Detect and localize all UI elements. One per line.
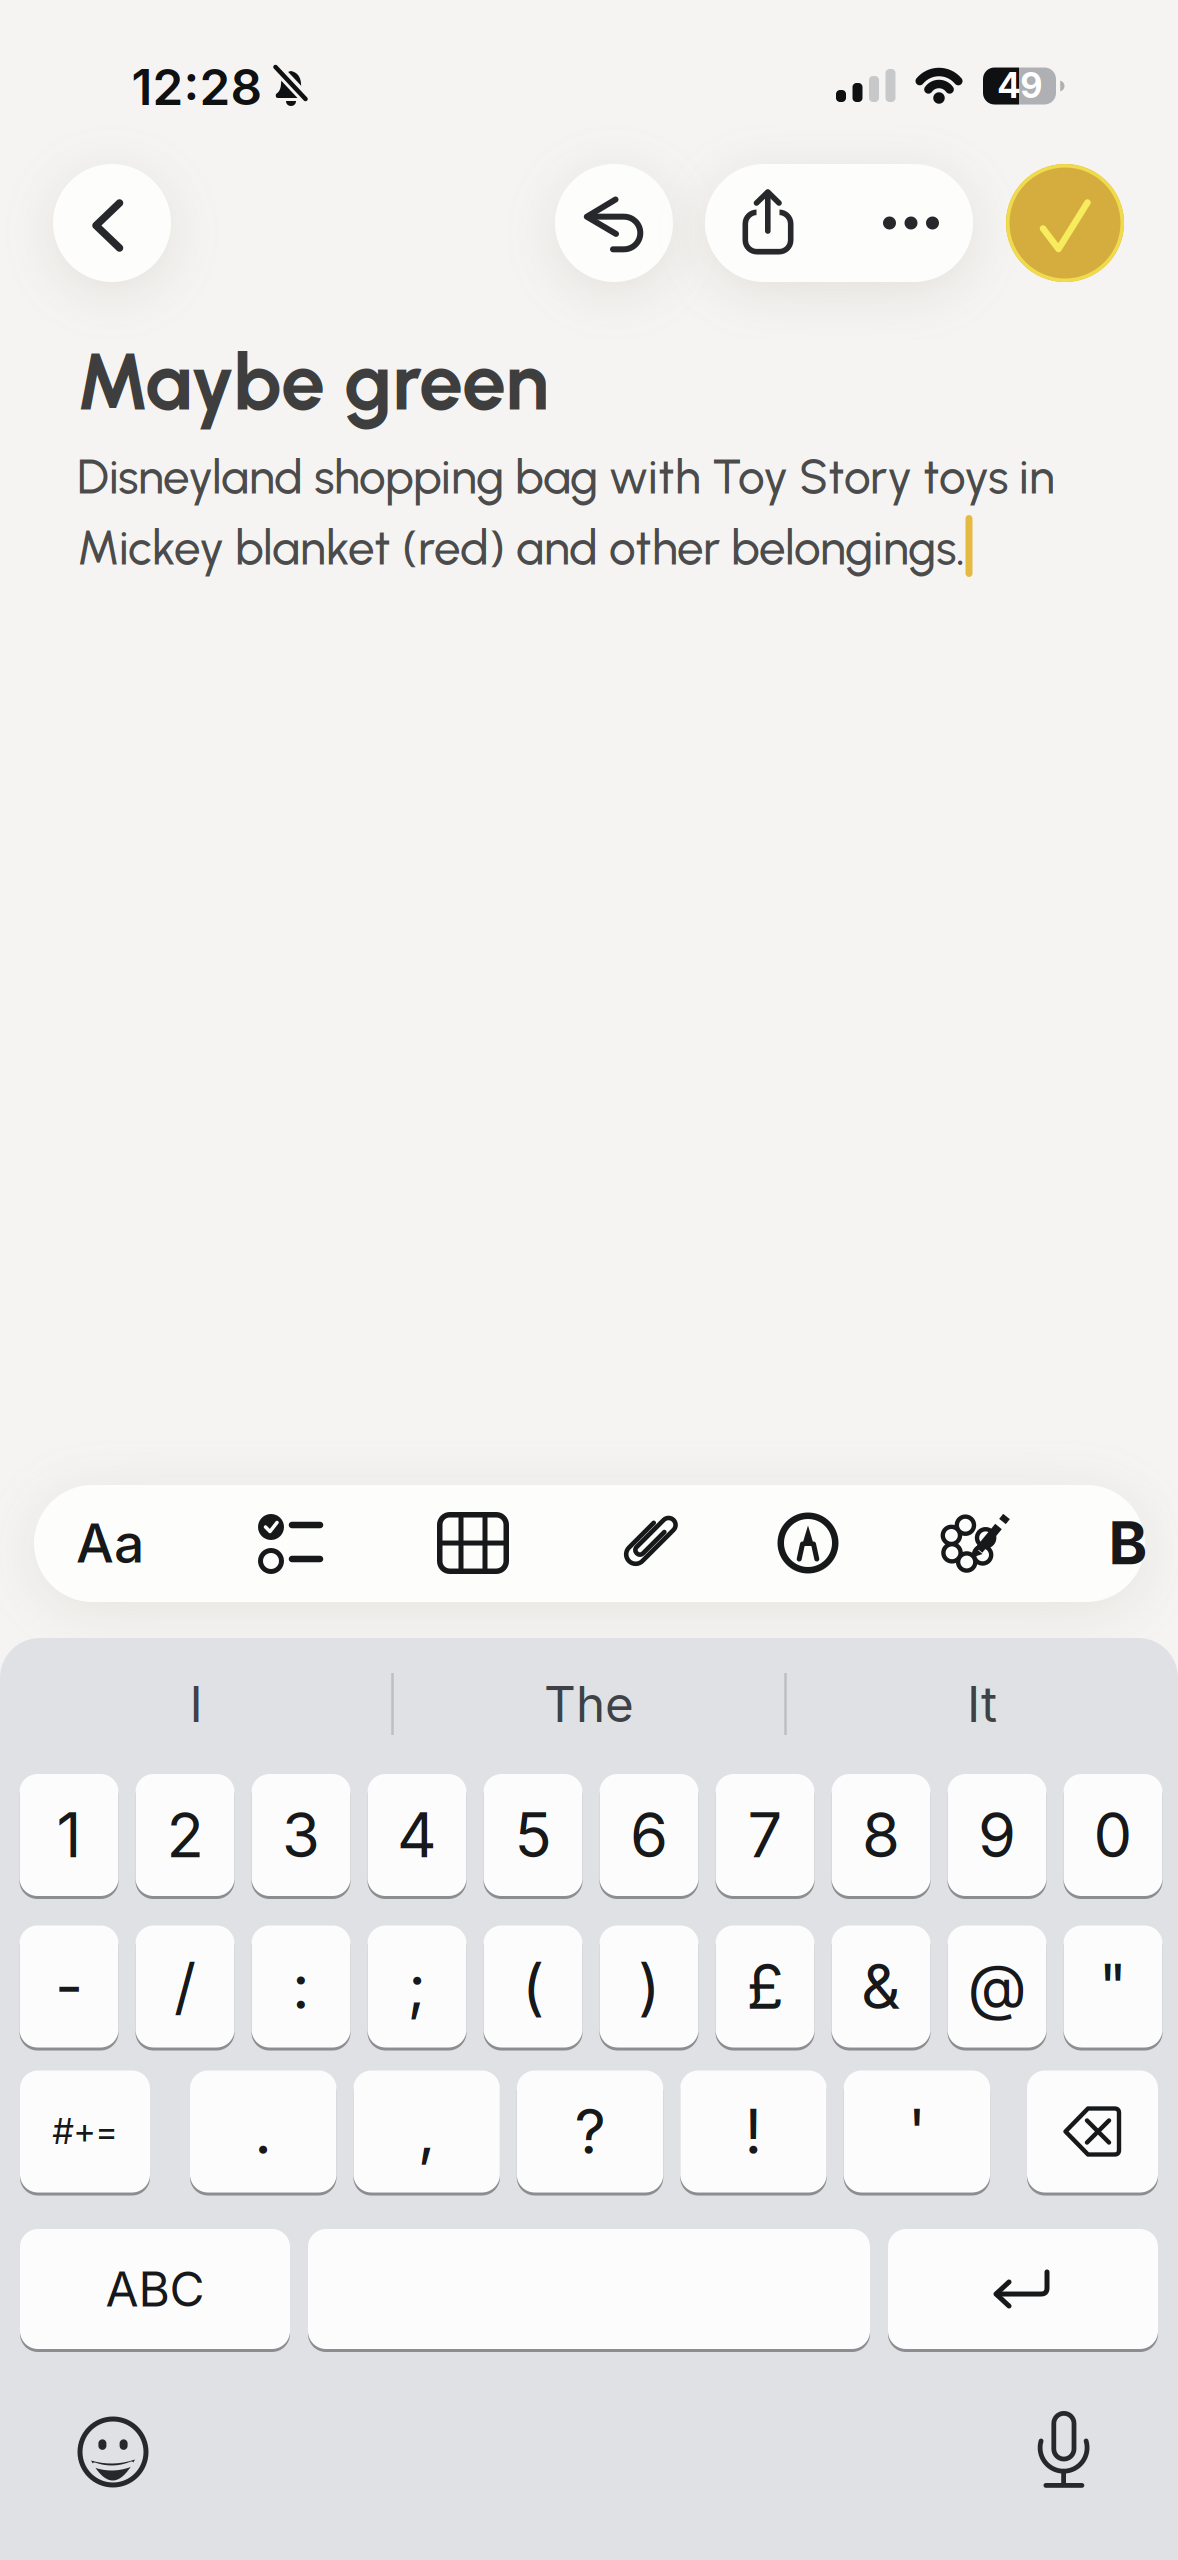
button[interactable]: Share <box>705 164 839 282</box>
staticText: ? <box>574 2094 605 2169</box>
button[interactable]: 2 <box>135 1772 234 1897</box>
button[interactable]: 6 <box>599 1772 698 1897</box>
button[interactable]: ( <box>483 1924 582 2049</box>
button[interactable]: , <box>353 2069 500 2194</box>
button[interactable]: ! <box>680 2069 827 2194</box>
button[interactable]: Draw <box>763 1498 853 1588</box>
button[interactable]: . <box>190 2069 336 2194</box>
button[interactable]: 4 <box>367 1772 466 1897</box>
staticText: ABC <box>105 2260 204 2318</box>
button[interactable]: 5 <box>483 1772 582 1897</box>
staticText: " <box>1098 1949 1127 2024</box>
button[interactable]: 7 <box>715 1772 814 1897</box>
button[interactable]: Return <box>888 2227 1158 2350</box>
button[interactable]: More <box>839 164 973 282</box>
button[interactable]: ; <box>367 1924 466 2049</box>
staticText: It <box>967 1674 997 1734</box>
staticText: I <box>189 1674 202 1734</box>
staticText: ' <box>908 2094 926 2169</box>
staticText: @ <box>967 1949 1026 2024</box>
button[interactable]: £ <box>715 1924 814 2049</box>
staticText: 5 <box>514 1798 551 1872</box>
staticText: #+= <box>52 2110 117 2152</box>
staticText: The <box>544 1674 634 1734</box>
button[interactable]: 9 <box>947 1772 1046 1897</box>
button[interactable]: I <box>1 1651 391 1756</box>
button[interactable]: ) <box>599 1924 698 2049</box>
staticText: . <box>254 2094 272 2169</box>
button[interactable]: Table <box>428 1498 518 1588</box>
button[interactable]: / <box>135 1924 234 2049</box>
staticText: 0 <box>1093 1798 1132 1872</box>
staticText: ! <box>744 2094 762 2169</box>
staticText: 3 <box>282 1798 320 1872</box>
staticText: 49 <box>997 64 1042 106</box>
button[interactable]: Text style <box>50 1484 170 1601</box>
button[interactable]: Dictate <box>1029 2400 1099 2500</box>
button[interactable]: Undo <box>555 164 673 282</box>
staticText: Maybe green <box>76 335 549 429</box>
staticText: / <box>174 1949 196 2024</box>
staticText: 2 <box>166 1798 203 1872</box>
button[interactable]: ? <box>517 2069 663 2194</box>
button[interactable]: Delete <box>1027 2069 1158 2194</box>
staticText: 6 <box>630 1798 668 1872</box>
staticText: Aa <box>76 1511 144 1575</box>
staticText: ; <box>407 1949 426 2024</box>
button[interactable]: 8 <box>831 1772 930 1897</box>
staticText: B <box>1108 1507 1147 1578</box>
staticText: 8 <box>862 1798 900 1872</box>
button[interactable]: AI assistant <box>923 1498 1013 1588</box>
button[interactable]: : <box>251 1924 350 2049</box>
staticText: , <box>418 2094 436 2169</box>
button[interactable]: - <box>19 1924 118 2049</box>
button[interactable]: Emoji <box>67 2406 159 2498</box>
button[interactable]: @ <box>947 1924 1046 2049</box>
staticText: ) <box>638 1949 660 2024</box>
staticText: Disneyland shopping bag with Toy Story t… <box>77 448 1055 505</box>
button[interactable]: 3 <box>251 1772 350 1897</box>
button[interactable]: Bold <box>1098 1484 1158 1601</box>
button[interactable]: Attach <box>602 1498 692 1588</box>
button[interactable]: 1 <box>19 1772 118 1897</box>
staticText: 9 <box>978 1798 1016 1872</box>
button[interactable]: Back <box>53 164 171 282</box>
button[interactable]: & <box>831 1924 930 2049</box>
staticText: - <box>55 1949 83 2024</box>
staticText: 12:28 <box>131 57 262 117</box>
button[interactable]: 0 <box>1063 1772 1162 1897</box>
button[interactable]: space <box>308 2227 870 2350</box>
staticText: Mickey blanket (red) and other belonging… <box>77 519 965 576</box>
button[interactable]: Checklist <box>245 1498 335 1588</box>
button[interactable]: Done <box>1006 164 1124 282</box>
staticText: & <box>861 1949 901 2024</box>
button[interactable]: The <box>394 1651 784 1756</box>
button[interactable]: It <box>787 1651 1177 1756</box>
button[interactable]: " <box>1063 1924 1162 2049</box>
staticText: 4 <box>397 1798 437 1872</box>
staticText: 1 <box>56 1798 81 1872</box>
button[interactable]: ABC <box>20 2227 290 2350</box>
staticText: ( <box>522 1949 544 2024</box>
button[interactable]: ' <box>844 2069 990 2194</box>
staticText: £ <box>746 1949 783 2024</box>
staticText: 7 <box>747 1798 782 1872</box>
staticText: : <box>292 1949 310 2024</box>
button[interactable]: #+= <box>20 2069 150 2194</box>
